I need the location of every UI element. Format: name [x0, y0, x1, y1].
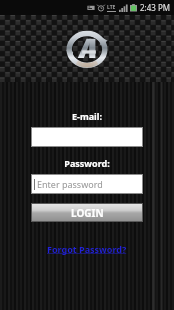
- button[interactable]: Forgot Password?: [43, 241, 131, 257]
- staticText: E-mail:: [72, 110, 102, 122]
- other: App logo: [63, 23, 111, 71]
- staticText: Enter password: [37, 178, 103, 190]
- button[interactable]: E-mail field: [31, 127, 143, 147]
- staticText: 2:43 PM: [140, 2, 171, 13]
- staticText: LOGIN: [71, 206, 104, 220]
- button[interactable]: LOGIN: [31, 203, 143, 222]
- staticText: Forgot Password?: [47, 243, 127, 255]
- staticText: Password:: [64, 157, 110, 169]
- button[interactable]: Password field: [31, 174, 143, 194]
- staticText: LTE: [107, 4, 116, 11]
